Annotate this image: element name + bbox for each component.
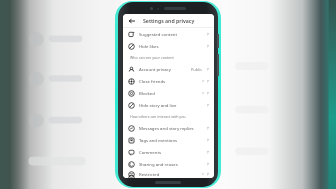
button[interactable]: Hide likes: [123, 40, 214, 52]
button[interactable]: Close friends: [123, 75, 214, 87]
staticText: Account privacy: [139, 66, 171, 72]
staticText: Comments: [139, 149, 162, 155]
button[interactable]: Comments: [123, 146, 214, 158]
button[interactable]: Account privacy: [123, 63, 214, 75]
button[interactable]: Suggested content: [123, 28, 214, 40]
staticText: Restricted: [139, 171, 160, 177]
staticText: Messages and story replies: [139, 125, 194, 131]
staticText: Suggested content: [139, 31, 178, 37]
button[interactable]: Sharing and reuses: [123, 158, 214, 170]
button[interactable]: Restricted: [123, 170, 214, 178]
staticText: Who can see your content: [130, 55, 174, 60]
staticText: Sharing and reuses: [139, 161, 178, 167]
staticText: Hide likes: [139, 43, 159, 49]
staticText: Blocked: [139, 90, 155, 96]
staticText: Settings and privacy: [143, 17, 195, 24]
staticText: Hide story and live: [139, 102, 177, 108]
button[interactable]: Messages and story replies: [123, 122, 214, 134]
staticText: Close friends: [139, 78, 166, 84]
button[interactable]: Blocked: [123, 87, 214, 99]
staticText: How others can interact with you: [130, 114, 186, 119]
button[interactable]: Tags and mentions: [123, 134, 214, 146]
button[interactable]: Back: [127, 16, 137, 26]
staticText: Tags and mentions: [139, 137, 178, 143]
button[interactable]: Hide story and live: [123, 99, 214, 111]
staticText: Public: [191, 67, 203, 72]
